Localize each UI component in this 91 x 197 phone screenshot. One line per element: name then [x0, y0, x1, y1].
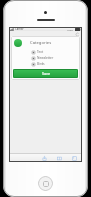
button[interactable]: Text	[11, 49, 80, 55]
button[interactable]: Book	[56, 155, 63, 162]
button[interactable]: Refresh	[75, 32, 79, 36]
staticText: Birds	[37, 62, 45, 66]
staticText: 100%	[67, 28, 74, 31]
button[interactable]: Save	[13, 69, 78, 78]
staticText: Save	[42, 71, 50, 76]
button[interactable]: Bookmark	[71, 155, 78, 162]
button[interactable]: Share	[41, 155, 48, 162]
staticText: Newsletter	[37, 56, 54, 60]
staticText: Text	[37, 50, 44, 54]
staticText: Categories	[30, 40, 52, 46]
button[interactable]: Birds	[11, 61, 80, 67]
staticText: Carrier	[15, 27, 24, 31]
button[interactable]: Newsletter	[11, 55, 80, 61]
button[interactable]: Profile	[14, 39, 22, 47]
button[interactable]: Home	[38, 176, 53, 191]
